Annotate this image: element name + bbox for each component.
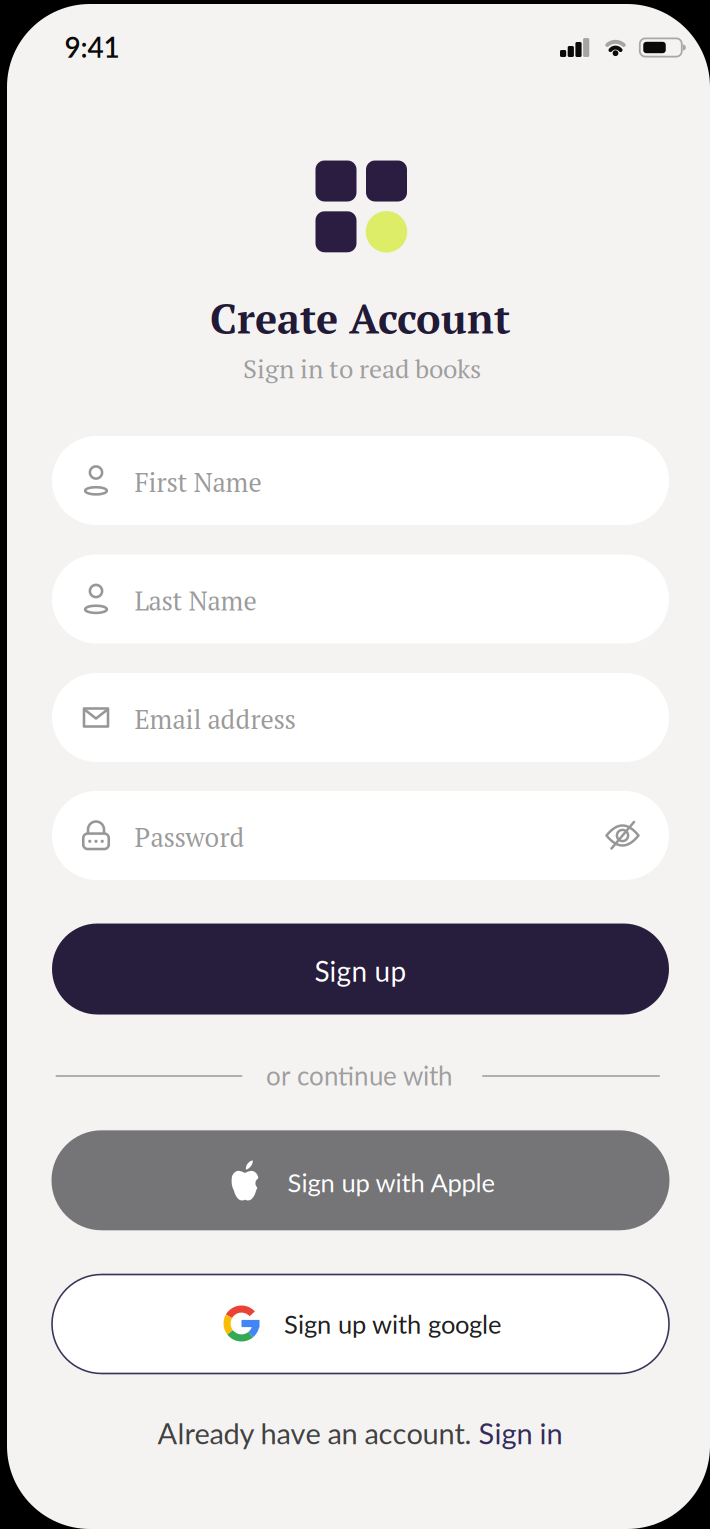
staticText: Sign in <box>478 1416 562 1450</box>
staticText: Sign in to read books <box>243 351 481 386</box>
button[interactable]: Sign up <box>52 923 669 1014</box>
staticText: Sign up with google <box>284 1309 501 1339</box>
staticText: Create Account <box>210 291 510 345</box>
button[interactable]: Sign up with google <box>52 1274 669 1373</box>
staticText: Sign up <box>314 954 406 988</box>
staticText: Last Name <box>134 583 256 618</box>
button[interactable]: First Name <box>52 436 669 525</box>
button[interactable]: Password <box>52 791 669 880</box>
staticText: 9:41 <box>64 30 119 64</box>
button[interactable]: Last Name <box>52 554 669 643</box>
button[interactable]: Sign in <box>478 1416 562 1450</box>
staticText: Sign up with Apple <box>287 1167 495 1198</box>
staticText: or continue with <box>266 1060 453 1091</box>
staticText: Already have an account. <box>157 1416 478 1450</box>
staticText: First Name <box>134 464 261 499</box>
button[interactable]: Email address <box>52 673 669 762</box>
staticText: Email address <box>134 701 295 736</box>
staticText: Password <box>134 819 244 854</box>
button[interactable]: Sign up with Apple <box>51 1130 669 1230</box>
